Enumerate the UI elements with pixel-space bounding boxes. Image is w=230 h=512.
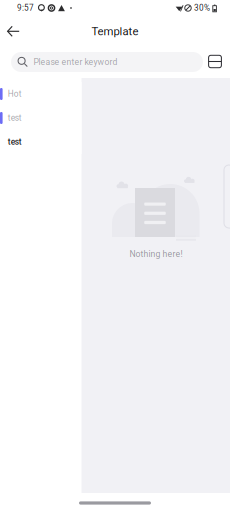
button[interactable]: test [0,130,81,154]
staticText: Template [91,25,138,38]
staticText: Please enter keyword [33,57,117,67]
staticText: test [8,137,22,147]
staticText: Hot [8,89,22,99]
staticText: 9:57 [17,3,34,13]
staticText: 30% [194,3,210,13]
staticText: Nothing here! [129,249,182,259]
staticText: test [8,113,22,123]
button[interactable]: Categories [203,50,227,72]
button[interactable]: Back [0,17,30,45]
button[interactable]: Hot [0,82,81,106]
button[interactable]: test [0,106,81,130]
button[interactable]: Please enter keyword [11,52,203,72]
